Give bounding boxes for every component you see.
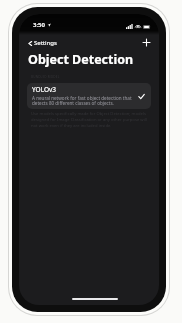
- staticText: Use models specifically made for Object …: [31, 111, 147, 129]
- staticText: Object Detection: [28, 51, 134, 68]
- button[interactable]: Settings: [26, 37, 59, 49]
- staticText: 3:50: [33, 21, 45, 29]
- staticText: Settings: [34, 39, 57, 47]
- staticText: YOLOv3: [32, 85, 56, 94]
- button[interactable]: Add: [141, 37, 152, 48]
- button[interactable]: YOLOv3: [27, 83, 151, 109]
- staticText: A neural network for fast object detecti…: [32, 95, 136, 106]
- staticText: BUNDLED MODEL: [31, 75, 60, 79]
